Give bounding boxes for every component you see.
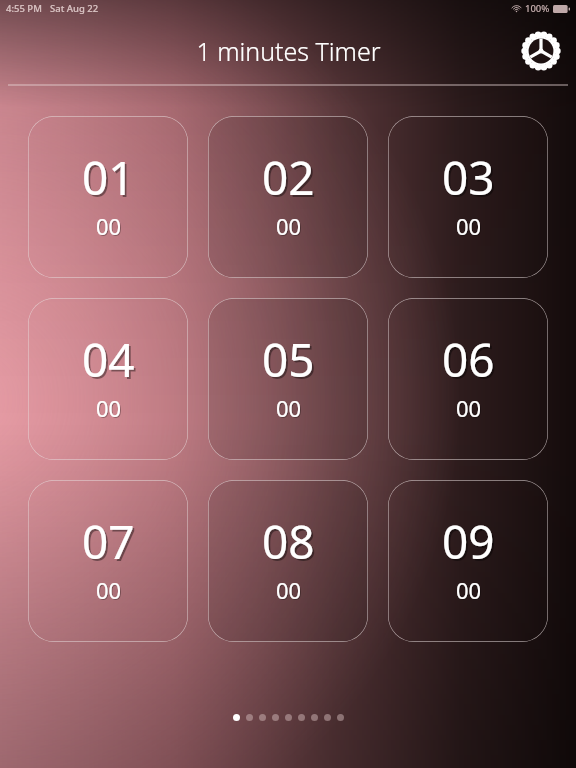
button[interactable]: 09 xyxy=(388,480,548,642)
staticText: 00 xyxy=(96,211,122,241)
button[interactable]: Page 8 xyxy=(321,711,334,724)
button[interactable]: 02 xyxy=(208,116,368,278)
staticText: 00 xyxy=(97,212,123,242)
button[interactable]: Page 3 xyxy=(256,711,269,724)
staticText: 00 xyxy=(96,575,122,605)
button[interactable]: 08 xyxy=(208,480,368,642)
staticText: 01 xyxy=(82,146,135,209)
staticText: 00 xyxy=(457,576,483,606)
staticText: 04 xyxy=(84,330,137,393)
staticText: 00 xyxy=(277,576,303,606)
staticText: 03 xyxy=(444,148,497,211)
staticText: 00 xyxy=(276,575,302,605)
staticText: 02 xyxy=(264,148,317,211)
staticText: 00 xyxy=(277,394,303,424)
button[interactable]: Page 2 xyxy=(243,711,256,724)
staticText: 03 xyxy=(442,146,495,209)
staticText: 01 xyxy=(84,148,137,211)
staticText: 00 xyxy=(97,394,123,424)
staticText: 00 xyxy=(456,575,482,605)
staticText: 00 xyxy=(457,394,483,424)
staticText: 08 xyxy=(262,510,315,573)
button[interactable]: 06 xyxy=(388,298,548,460)
button[interactable]: 03 xyxy=(388,116,548,278)
staticText: 02 xyxy=(262,146,315,209)
staticText: 04 xyxy=(82,328,135,391)
button[interactable]: 05 xyxy=(208,298,368,460)
staticText: 00 xyxy=(276,393,302,423)
staticText: 100% xyxy=(525,2,550,15)
staticText: 00 xyxy=(457,212,483,242)
staticText: 05 xyxy=(262,328,315,391)
staticText: 07 xyxy=(82,510,135,573)
staticText: 00 xyxy=(276,211,302,241)
button[interactable]: 07 xyxy=(28,480,188,642)
staticText: 00 xyxy=(97,576,123,606)
staticText: 06 xyxy=(442,328,495,391)
button[interactable]: Settings xyxy=(518,28,564,74)
staticText: Sat Aug 22 xyxy=(50,2,99,15)
button[interactable]: 04 xyxy=(28,298,188,460)
staticText: 00 xyxy=(456,393,482,423)
staticText: 08 xyxy=(264,512,317,575)
button[interactable]: Page 4 xyxy=(269,711,282,724)
staticText: 05 xyxy=(264,330,317,393)
button[interactable]: Page 9 xyxy=(334,711,347,724)
staticText: 00 xyxy=(277,212,303,242)
staticText: 07 xyxy=(84,512,137,575)
button[interactable]: Page 7 xyxy=(308,711,321,724)
staticText: 06 xyxy=(444,330,497,393)
staticText: 00 xyxy=(96,393,122,423)
button[interactable]: Page 6 xyxy=(295,711,308,724)
button[interactable]: Page 5 xyxy=(282,711,295,724)
button[interactable]: 01 xyxy=(28,116,188,278)
staticText: 4:55 PM xyxy=(6,2,42,15)
staticText: 09 xyxy=(444,512,497,575)
staticText: 1 minutes Timer xyxy=(196,34,381,68)
staticText: 00 xyxy=(456,211,482,241)
button[interactable]: Page 1 xyxy=(230,711,243,724)
staticText: 09 xyxy=(442,510,495,573)
